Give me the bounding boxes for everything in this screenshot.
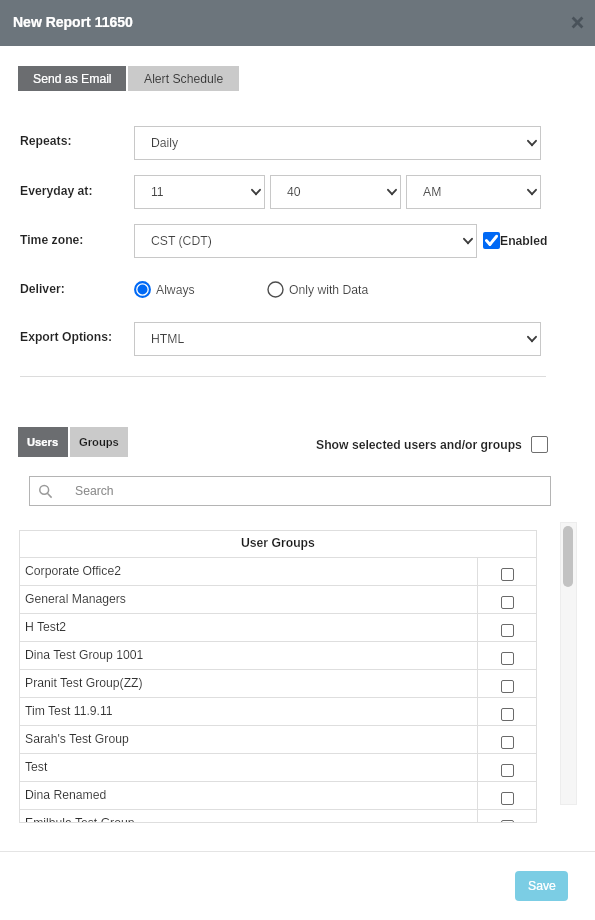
button[interactable]: Search — [29, 476, 551, 506]
button[interactable]: Test — [19, 754, 537, 782]
button[interactable]: Daily — [134, 126, 541, 160]
staticText: Repeats: — [20, 134, 72, 148]
button[interactable]: Tim Test 11.9.11 — [19, 698, 537, 726]
staticText: General Managers — [25, 592, 126, 606]
staticText: H Test2 — [25, 620, 67, 634]
button[interactable]: Send as Email — [18, 66, 126, 91]
staticText: Corporate Office2 — [25, 564, 121, 578]
button[interactable]: Dina Renamed — [19, 782, 537, 810]
staticText: Only with Data — [289, 283, 369, 297]
button[interactable]: AM — [406, 175, 541, 209]
button[interactable]: Alert Schedule — [128, 66, 239, 91]
button[interactable]: Groups — [70, 427, 128, 457]
button[interactable]: Dina Test Group 1001 — [19, 642, 537, 670]
staticText: HTML — [151, 332, 185, 346]
staticText: Dina Test Group 1001 — [25, 648, 144, 662]
button[interactable]: Emilbula Test Group — [19, 810, 537, 823]
staticText: AM — [423, 185, 442, 199]
button[interactable]: General Managers — [19, 586, 537, 614]
staticText: Users — [27, 436, 59, 449]
button[interactable]: Corporate Office2 — [19, 558, 537, 586]
button[interactable]: Enabled — [483, 232, 548, 249]
button[interactable]: 40 — [270, 175, 401, 209]
staticText: Dina Renamed — [25, 788, 107, 802]
staticText: 40 — [287, 185, 301, 199]
staticText: Pranit Test Group(ZZ) — [25, 676, 143, 690]
button[interactable]: H Test2 — [19, 614, 537, 642]
staticText: User Groups — [241, 536, 315, 550]
staticText: Tim Test 11.9.11 — [25, 704, 113, 718]
staticText: Search — [75, 484, 114, 498]
staticText: Time zone: — [20, 233, 84, 247]
button[interactable]: CST (CDT) — [134, 224, 477, 258]
staticText: 11 — [151, 185, 164, 199]
button[interactable]: Show selected users and/or groups — [316, 436, 548, 453]
button[interactable]: HTML — [134, 322, 541, 356]
staticText: Send as Email — [33, 72, 112, 86]
staticText: Export Options: — [20, 330, 113, 344]
staticText: Deliver: — [20, 282, 65, 296]
button[interactable]: Only with Data — [267, 281, 369, 298]
staticText: Show selected users and/or groups — [316, 438, 522, 452]
button[interactable]: 11 — [134, 175, 265, 209]
staticText: New Report 11650 — [13, 14, 133, 30]
staticText: Test — [25, 760, 48, 774]
staticText: Emilbula Test Group — [25, 816, 135, 823]
staticText: Enabled — [500, 234, 548, 248]
staticText: Save — [528, 879, 556, 893]
staticText: Sarah's Test Group — [25, 732, 129, 746]
staticText: Alert Schedule — [144, 72, 224, 86]
staticText: Daily — [151, 136, 179, 150]
button[interactable]: Sarah's Test Group — [19, 726, 537, 754]
staticText: Groups — [79, 436, 119, 449]
staticText: Everyday at: — [20, 184, 93, 198]
staticText: Always — [156, 283, 195, 297]
button[interactable]: Users — [18, 427, 68, 457]
button[interactable]: Always — [134, 281, 195, 298]
button[interactable]: Close dialog — [564, 9, 590, 35]
button[interactable]: Pranit Test Group(ZZ) — [19, 670, 537, 698]
button[interactable]: Save — [515, 871, 568, 901]
staticText: CST (CDT) — [151, 234, 212, 248]
